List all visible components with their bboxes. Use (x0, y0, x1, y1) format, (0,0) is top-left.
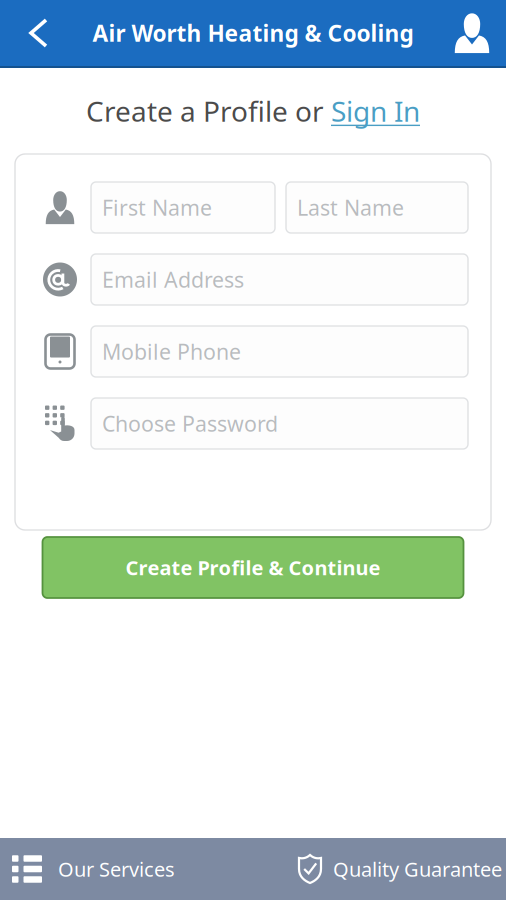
staticText: Create a Profile or (86, 92, 331, 130)
staticText: Mobile Phone (102, 337, 241, 366)
button[interactable]: Sign In (331, 92, 420, 130)
button[interactable]: Quality Guarantee (285, 838, 506, 900)
staticText: Choose Password (102, 409, 278, 438)
staticText: Our Services (58, 856, 175, 882)
staticText: Air Worth Heating & Cooling (92, 18, 413, 48)
button[interactable]: Back (0, 0, 72, 66)
staticText: Quality Guarantee (333, 856, 502, 882)
staticText: Last Name (297, 193, 404, 222)
button[interactable]: Create Profile & Continue (42, 537, 463, 598)
button[interactable]: Account (438, 0, 506, 66)
staticText: Email Address (102, 265, 244, 294)
staticText: Sign In (331, 92, 420, 130)
staticText: First Name (102, 193, 212, 222)
staticText: Create Profile & Continue (125, 554, 380, 581)
button[interactable]: Our Services (0, 838, 285, 900)
